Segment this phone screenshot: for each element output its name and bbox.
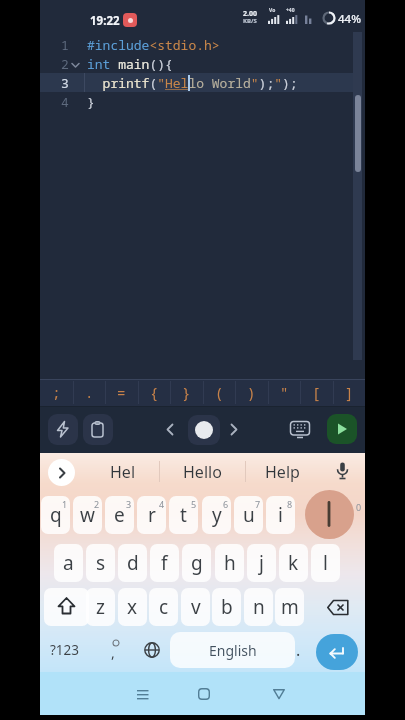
staticText: 5: [191, 498, 197, 510]
staticText: 2: [61, 55, 69, 73]
button[interactable]: d: [118, 544, 147, 582]
button[interactable]: [134, 631, 170, 669]
staticText: 44%: [338, 11, 361, 27]
button[interactable]: c: [149, 588, 178, 626]
staticText: }: [87, 93, 95, 111]
staticText: a: [63, 550, 74, 576]
button[interactable]: [128, 680, 156, 708]
staticText: ?123: [50, 641, 80, 659]
staticText: f: [161, 550, 168, 576]
staticText: u: [243, 502, 255, 528]
button[interactable]: w: [73, 496, 102, 534]
staticText: 6: [223, 498, 229, 510]
button[interactable]: [48, 414, 78, 445]
staticText: {: [150, 383, 159, 402]
button[interactable]: u: [234, 496, 263, 534]
button[interactable]: [188, 415, 220, 445]
button[interactable]: ?123: [44, 631, 86, 669]
staticText: v: [191, 594, 201, 620]
staticText: 1: [62, 498, 68, 510]
staticText: i: [278, 502, 283, 528]
button[interactable]: r: [137, 496, 166, 534]
button[interactable]: x: [118, 588, 147, 626]
button[interactable]: z: [86, 588, 115, 626]
button[interactable]: ": [268, 380, 300, 405]
button[interactable]: [48, 459, 75, 486]
button[interactable]: v: [181, 588, 210, 626]
button[interactable]: .: [288, 631, 308, 669]
staticText: l: [323, 550, 328, 576]
button[interactable]: e: [105, 496, 134, 534]
staticText: w: [80, 502, 95, 528]
staticText: j: [259, 550, 264, 576]
button[interactable]: [327, 414, 357, 444]
button[interactable]: a: [54, 544, 83, 582]
button[interactable]: English: [170, 632, 295, 668]
button[interactable]: [222, 414, 246, 445]
button[interactable]: }: [170, 380, 202, 405]
staticText: KB/S: [243, 17, 257, 25]
staticText: [: [312, 383, 321, 402]
button[interactable]: i: [266, 496, 295, 534]
staticText: q: [50, 502, 62, 528]
button[interactable]: =: [105, 380, 137, 405]
button[interactable]: ): [235, 380, 267, 405]
staticText: 2.00: [243, 9, 257, 19]
button[interactable]: j: [247, 544, 276, 582]
button[interactable]: [316, 634, 358, 670]
staticText: g: [191, 550, 203, 576]
button[interactable]: y: [202, 496, 231, 534]
staticText: n: [253, 594, 265, 620]
button[interactable]: {: [138, 380, 170, 405]
staticText: int main(){: [87, 55, 173, 73]
button[interactable]: [328, 455, 358, 489]
staticText: 2: [94, 498, 100, 510]
button[interactable]: [158, 414, 182, 445]
button[interactable]: t: [169, 496, 198, 534]
staticText: x: [127, 594, 138, 620]
button[interactable]: m: [275, 588, 304, 626]
button[interactable]: l: [311, 544, 340, 582]
button[interactable]: h: [215, 544, 244, 582]
button[interactable]: [: [300, 380, 332, 405]
button[interactable]: [96, 631, 132, 669]
button[interactable]: (: [203, 380, 235, 405]
staticText: ": [280, 383, 289, 402]
staticText: 3: [126, 498, 132, 510]
button[interactable]: g: [182, 544, 211, 582]
button[interactable]: f: [150, 544, 179, 582]
button[interactable]: Hello: [162, 455, 242, 489]
staticText: 8: [287, 498, 293, 510]
staticText: Help: [265, 461, 300, 483]
staticText: b: [221, 594, 233, 620]
button[interactable]: ;: [40, 380, 72, 405]
button[interactable]: s: [86, 544, 115, 582]
button[interactable]: Hel: [90, 455, 156, 489]
staticText: z: [96, 594, 105, 620]
button[interactable]: k: [279, 544, 308, 582]
staticText: Hello: [183, 461, 222, 483]
staticText: ): [247, 383, 256, 402]
button[interactable]: [265, 680, 293, 708]
button[interactable]: [280, 414, 320, 445]
button[interactable]: [83, 414, 113, 445]
staticText: k: [288, 550, 299, 576]
staticText: e: [114, 502, 125, 528]
button[interactable]: Help: [246, 455, 318, 489]
button[interactable]: .: [73, 380, 105, 405]
staticText: 4: [61, 93, 69, 111]
button[interactable]: [316, 588, 361, 626]
button[interactable]: ]: [333, 380, 365, 405]
staticText: =: [117, 383, 126, 402]
staticText: h: [224, 550, 236, 576]
button[interactable]: [190, 680, 218, 708]
button[interactable]: b: [212, 588, 241, 626]
staticText: }: [182, 383, 191, 402]
button[interactable]: q: [41, 496, 70, 534]
staticText: #include<stdio.h>: [87, 36, 220, 54]
button[interactable]: n: [244, 588, 273, 626]
button[interactable]: [44, 588, 89, 626]
staticText: ,: [111, 643, 115, 662]
staticText: ]: [345, 383, 354, 402]
staticText: 1: [61, 36, 69, 54]
